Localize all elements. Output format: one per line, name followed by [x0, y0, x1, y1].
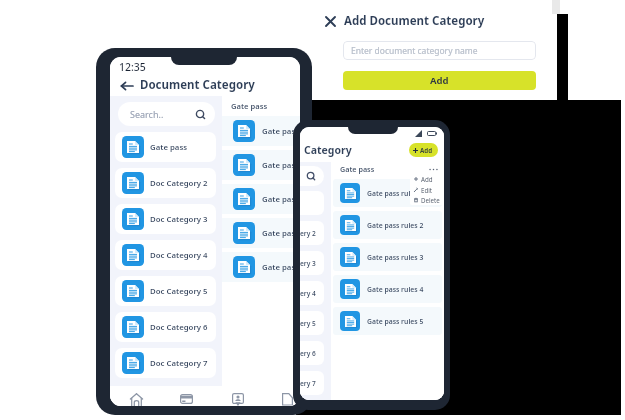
- staticText: Enter document category name: [351, 45, 478, 57]
- button[interactable]: ery 6: [300, 341, 324, 365]
- staticText: Doc Category 5: [150, 286, 208, 297]
- staticText: ery 2: [300, 229, 316, 238]
- button[interactable]: Doc Category 5: [115, 276, 216, 306]
- other: Close: [322, 13, 338, 29]
- button[interactable]: Doc Category 6: [115, 312, 216, 342]
- button[interactable]: Cards: [176, 389, 196, 406]
- button[interactable]: Gate pass: [222, 184, 300, 214]
- button[interactable]: Edit: [414, 184, 443, 195]
- staticText: Doc Category 6: [150, 322, 208, 333]
- staticText: Gate pass: [150, 142, 188, 153]
- button[interactable]: Back: [119, 78, 134, 93]
- button[interactable]: [300, 166, 324, 186]
- staticText: Gate pass rules 1: [367, 189, 424, 198]
- button[interactable]: Category: [304, 143, 352, 157]
- button[interactable]: Doc Category 3: [115, 204, 216, 234]
- staticText: Edit: [421, 186, 433, 194]
- staticText: ery 5: [300, 319, 316, 328]
- staticText: ery 6: [300, 349, 316, 358]
- staticText: Gate pass: [262, 126, 300, 137]
- staticText: Gate pass: [262, 262, 300, 273]
- button[interactable]: Profile: [228, 389, 248, 406]
- button[interactable]: Gate pass: [115, 132, 216, 162]
- staticText: Add: [430, 74, 449, 87]
- button[interactable]: Documents: [277, 389, 297, 406]
- button[interactable]: Enter document category name: [343, 41, 536, 60]
- staticText: Gate pass rules 3: [367, 253, 424, 262]
- button[interactable]: Doc Category 7: [115, 348, 216, 378]
- staticText: ery 7: [300, 379, 316, 388]
- staticText: Doc Category 3: [150, 214, 208, 225]
- staticText: Search..: [130, 108, 164, 120]
- staticText: Gate pass: [262, 194, 300, 205]
- staticText: ery 3: [300, 259, 316, 268]
- staticText: 12:35: [119, 60, 146, 74]
- staticText: Document Category: [140, 77, 255, 93]
- staticText: Add: [421, 175, 433, 183]
- button[interactable]: Gate pass rules 1: [333, 179, 442, 207]
- button[interactable]: Gate pass rules 2: [333, 211, 442, 239]
- button[interactable]: ery 3: [300, 251, 324, 275]
- button[interactable]: Add: [414, 173, 443, 184]
- button[interactable]: Gate pass rules 3: [333, 243, 442, 271]
- button[interactable]: Doc Category 2: [115, 168, 216, 198]
- staticText: Gate pass: [262, 228, 300, 239]
- button[interactable]: ery 2: [300, 221, 324, 245]
- staticText: Gate pass rules 4: [367, 285, 424, 294]
- staticText: Add Document Category: [344, 13, 485, 29]
- button[interactable]: Home: [126, 389, 146, 406]
- staticText: Gate pass: [262, 160, 300, 171]
- staticText: Gate pass: [231, 101, 268, 111]
- button[interactable]: Gate pass rules 4: [333, 275, 442, 303]
- staticText: Gate pass rules 5: [367, 317, 424, 326]
- staticText: Gate pass rules 2: [367, 221, 424, 230]
- button[interactable]: Add: [409, 143, 438, 157]
- staticText: Doc Category 2: [150, 178, 208, 189]
- button[interactable]: Gate pass: [222, 116, 300, 146]
- button[interactable]: More options: [427, 163, 439, 175]
- button[interactable]: Gate pass: [222, 150, 300, 180]
- button[interactable]: ery 5: [300, 311, 324, 335]
- staticText: Doc Category 4: [150, 250, 208, 261]
- button[interactable]: Doc Category 4: [115, 240, 216, 270]
- staticText: Delete: [421, 196, 440, 204]
- button[interactable]: Close: [322, 13, 485, 29]
- staticText: Add: [420, 146, 433, 154]
- button[interactable]: Add: [343, 71, 536, 90]
- button[interactable]: Gate pass: [222, 218, 300, 248]
- staticText: ery 4: [300, 289, 316, 298]
- button[interactable]: Search..: [118, 102, 215, 126]
- button[interactable]: Gate pass rules 5: [333, 307, 442, 335]
- staticText: Category: [304, 143, 352, 157]
- staticText: Doc Category 7: [150, 358, 208, 369]
- button[interactable]: Gate pass: [222, 252, 300, 282]
- button[interactable]: ery 4: [300, 281, 324, 305]
- button[interactable]: Delete: [414, 195, 443, 205]
- button[interactable]: ery 7: [300, 371, 324, 395]
- staticText: Gate pass: [340, 164, 375, 174]
